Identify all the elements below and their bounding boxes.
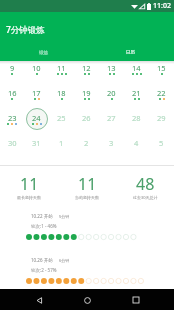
staticText: 3 (109, 138, 114, 148)
button[interactable]: 19 (74, 86, 99, 111)
button[interactable]: 29 (149, 111, 174, 136)
button[interactable]: 26 (74, 111, 99, 136)
button[interactable]: 3 (99, 136, 124, 161)
staticText: 7分钟锻炼 (6, 24, 45, 36)
button[interactable]: 31 (24, 136, 49, 161)
staticText: 12 (82, 63, 91, 73)
staticText: 19 (82, 88, 91, 98)
staticText: 5分钟 (59, 214, 70, 219)
button[interactable]: 23 (0, 111, 24, 136)
button[interactable]: 12 (74, 61, 99, 86)
staticText: 13 (107, 63, 116, 73)
staticText: 9 (10, 63, 15, 73)
staticText: 10 (32, 63, 41, 73)
staticText: 轮次:1 - 46% (31, 223, 57, 229)
staticText: 28 (132, 113, 141, 123)
staticText: 24 (32, 113, 41, 123)
staticText: 48 (136, 173, 155, 195)
button[interactable]: 30 (0, 136, 24, 161)
staticText: 11:02 (153, 1, 171, 11)
button[interactable]: 10.26 开始 (0, 257, 174, 291)
button[interactable]: 1 (49, 136, 74, 161)
button[interactable]: Home (77, 290, 97, 310)
staticText: 1 (59, 138, 64, 148)
button[interactable]: 10.22 开始 (0, 213, 174, 247)
button[interactable]: 17 (24, 86, 49, 111)
button[interactable]: 20 (99, 86, 124, 111)
staticText: 锻炼 (39, 50, 48, 56)
button[interactable]: 27 (99, 111, 124, 136)
staticText: 22 (157, 88, 166, 98)
staticText: 20 (107, 88, 116, 98)
staticText: 23 (8, 113, 17, 123)
staticText: 27 (107, 113, 116, 123)
button[interactable]: 10 (24, 61, 49, 86)
button[interactable]: 28 (124, 111, 149, 136)
button[interactable]: 锻炼 (0, 44, 87, 61)
button[interactable]: 9 (0, 61, 24, 86)
button[interactable]: 5 (149, 136, 174, 161)
button[interactable]: 15 (149, 61, 174, 86)
staticText: 26 (82, 113, 91, 123)
button[interactable]: Back (29, 290, 49, 310)
staticText: 当前坚持天数 (75, 195, 99, 200)
staticText: 25 (57, 113, 66, 123)
staticText: 15 (157, 63, 166, 73)
button[interactable]: 日历 (87, 44, 174, 61)
button[interactable]: 13 (99, 61, 124, 86)
staticText: 11 (20, 173, 39, 195)
staticText: 5 (159, 138, 164, 148)
staticText: 14 (132, 63, 141, 73)
button[interactable]: Recents (126, 290, 146, 310)
staticText: 4 (134, 138, 139, 148)
button[interactable]: 14 (124, 61, 149, 86)
staticText: 11 (78, 173, 97, 195)
button[interactable]: 18 (49, 86, 74, 111)
staticText: 18 (57, 88, 66, 98)
staticText: 日历 (126, 50, 135, 56)
staticText: 6分钟 (59, 258, 70, 263)
staticText: 17 (32, 88, 41, 98)
staticText: 21 (132, 88, 141, 98)
button[interactable]: 22 (149, 86, 174, 111)
staticText: 29 (157, 113, 166, 123)
staticText: 10.22 开始 (31, 213, 53, 219)
button[interactable]: 11 (49, 61, 74, 86)
staticText: 10.26 开始 (31, 257, 53, 263)
button[interactable]: 16 (0, 86, 24, 111)
button[interactable]: 24 (24, 111, 49, 136)
button[interactable]: 25 (49, 111, 74, 136)
button[interactable]: 4 (124, 136, 149, 161)
staticText: 16 (8, 88, 17, 98)
button[interactable]: 21 (124, 86, 149, 111)
staticText: 2 (84, 138, 89, 148)
staticText: 31 (32, 138, 41, 148)
staticText: 过去30天总计 (133, 195, 158, 200)
staticText: 30 (8, 138, 17, 148)
staticText: 最长坚持天数 (17, 195, 41, 200)
staticText: 11 (57, 63, 66, 73)
staticText: 轮次:2 - 57% (31, 267, 57, 273)
button[interactable]: 2 (74, 136, 99, 161)
